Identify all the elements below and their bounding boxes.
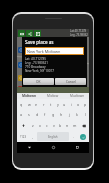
button[interactable]: z [29,120,36,131]
button[interactable]: t [47,99,54,109]
staticText: English [48,135,58,139]
button[interactable]: w [25,99,33,109]
button[interactable]: Backspace [78,120,89,131]
button[interactable]: m [71,120,78,131]
staticText: Cancel [66,80,76,84]
staticText: h [60,112,63,117]
button[interactable]: v [50,120,57,131]
staticText: r [43,102,45,107]
staticText: k [76,112,78,117]
staticText: s [28,112,30,117]
staticText: i [71,102,72,107]
button[interactable]: New York Midtown [26,48,83,54]
button[interactable]: l [81,109,89,120]
staticText: z [32,123,34,128]
staticText: m [73,123,77,128]
button[interactable]: r [40,99,47,109]
button[interactable]: ?123 [17,131,29,142]
staticText: Lng -73.98062 [70,33,88,37]
staticText: Lat 40.71278 [70,29,87,33]
staticText: Lng: -73.980621 [25,61,49,65]
staticText: w [28,102,31,107]
staticText: . [73,134,74,139]
staticText: Save place as [25,39,54,45]
staticText: x [39,123,41,128]
button[interactable]: OK [23,78,54,85]
button[interactable]: Record [18,86,24,92]
button[interactable]: d [33,109,41,120]
button[interactable]: e [33,99,40,109]
button[interactable]: Comma [29,131,36,142]
button[interactable]: k [73,109,81,120]
staticText: g [52,112,55,117]
button[interactable]: Take photo [18,30,25,37]
button[interactable]: Open map [34,30,41,37]
staticText: f [44,112,46,117]
button[interactable]: Midtown [17,93,41,99]
staticText: OK [36,80,41,84]
staticText: , [32,134,33,139]
button[interactable]: x [36,120,43,131]
button[interactable]: Enter [77,131,89,142]
staticText: c [46,123,48,128]
button[interactable]: i [68,99,75,109]
staticText: Lat: 40.712785 [25,57,47,61]
button[interactable]: Cancel [55,78,86,85]
button[interactable]: Shift [17,120,29,131]
button[interactable]: b [57,120,64,131]
button[interactable]: Back [17,142,41,153]
button[interactable]: Share location [26,30,33,37]
staticText: u [63,102,66,107]
button[interactable]: n [64,120,71,131]
button[interactable]: f [41,109,49,120]
button[interactable]: u [61,99,68,109]
staticText: p [84,102,87,107]
button[interactable]: o [75,99,82,109]
staticText: q [20,102,23,107]
button[interactable]: y [54,99,61,109]
staticText: 710 Broadway [25,65,46,69]
button[interactable]: Recent apps [65,142,89,153]
button[interactable]: s [25,109,33,120]
button[interactable]: a [17,109,25,120]
staticText: e [35,102,38,107]
staticText: Midtown [22,94,37,98]
staticText: New York Midtown [27,49,61,54]
button[interactable]: c [43,120,50,131]
button[interactable]: English [37,132,69,141]
staticText: Midtow [47,94,59,98]
button[interactable]: Home [41,142,65,153]
staticText: Mudtown [70,94,85,98]
button[interactable]: p [82,99,89,109]
staticText: l [85,112,86,117]
button[interactable]: Mudtown [65,93,89,99]
button[interactable]: q [17,99,25,109]
staticText: n [66,123,69,128]
staticText: t [50,102,52,107]
staticText: o [77,102,80,107]
staticText: d [36,112,39,117]
staticText: y [57,102,59,107]
button[interactable]: Map layers [18,47,24,53]
staticText: ?123 [20,135,27,139]
button[interactable]: h [57,109,65,120]
button[interactable]: Midtow [41,93,65,99]
button[interactable]: Navigate [18,62,24,68]
button[interactable]: g [49,109,57,120]
staticText: a [20,112,23,117]
staticText: New York, NY 10017 [25,69,55,73]
button[interactable]: Bookmarks [18,75,24,81]
staticText: b [59,123,62,128]
button[interactable]: j [65,109,73,120]
staticText: v [53,123,55,128]
staticText: j [69,112,70,117]
